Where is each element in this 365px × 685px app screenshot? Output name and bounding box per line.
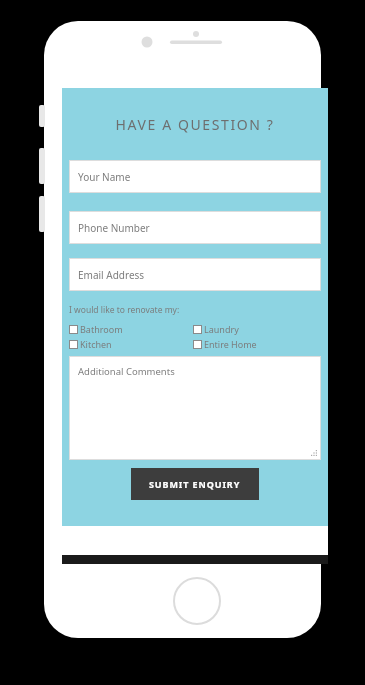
staticText: Kitchen <box>80 338 112 350</box>
button[interactable]: Laundry <box>193 323 328 335</box>
staticText: Email Address <box>78 268 145 282</box>
button[interactable]: Additional Comments <box>69 356 321 460</box>
button[interactable]: SUBMIT ENQUIRY <box>131 468 259 500</box>
staticText: I would like to renovate my: <box>69 304 180 316</box>
staticText: Laundry <box>204 323 239 335</box>
button[interactable]: Entire Home <box>193 338 328 350</box>
staticText: Entire Home <box>204 338 257 350</box>
button[interactable]: Your Name <box>69 160 321 193</box>
staticText: Bathroom <box>80 323 123 335</box>
button[interactable]: Home <box>173 577 221 625</box>
staticText: Your Name <box>78 170 131 184</box>
staticText: HAVE A QUESTION ? <box>62 115 328 134</box>
button[interactable]: Email Address <box>69 258 321 291</box>
button[interactable]: Bathroom <box>69 323 193 335</box>
button[interactable]: Phone Number <box>69 211 321 244</box>
button[interactable]: Kitchen <box>69 338 193 350</box>
staticText: SUBMIT ENQUIRY <box>149 478 241 490</box>
staticText: Additional Comments <box>78 365 175 378</box>
staticText: Phone Number <box>78 221 150 235</box>
